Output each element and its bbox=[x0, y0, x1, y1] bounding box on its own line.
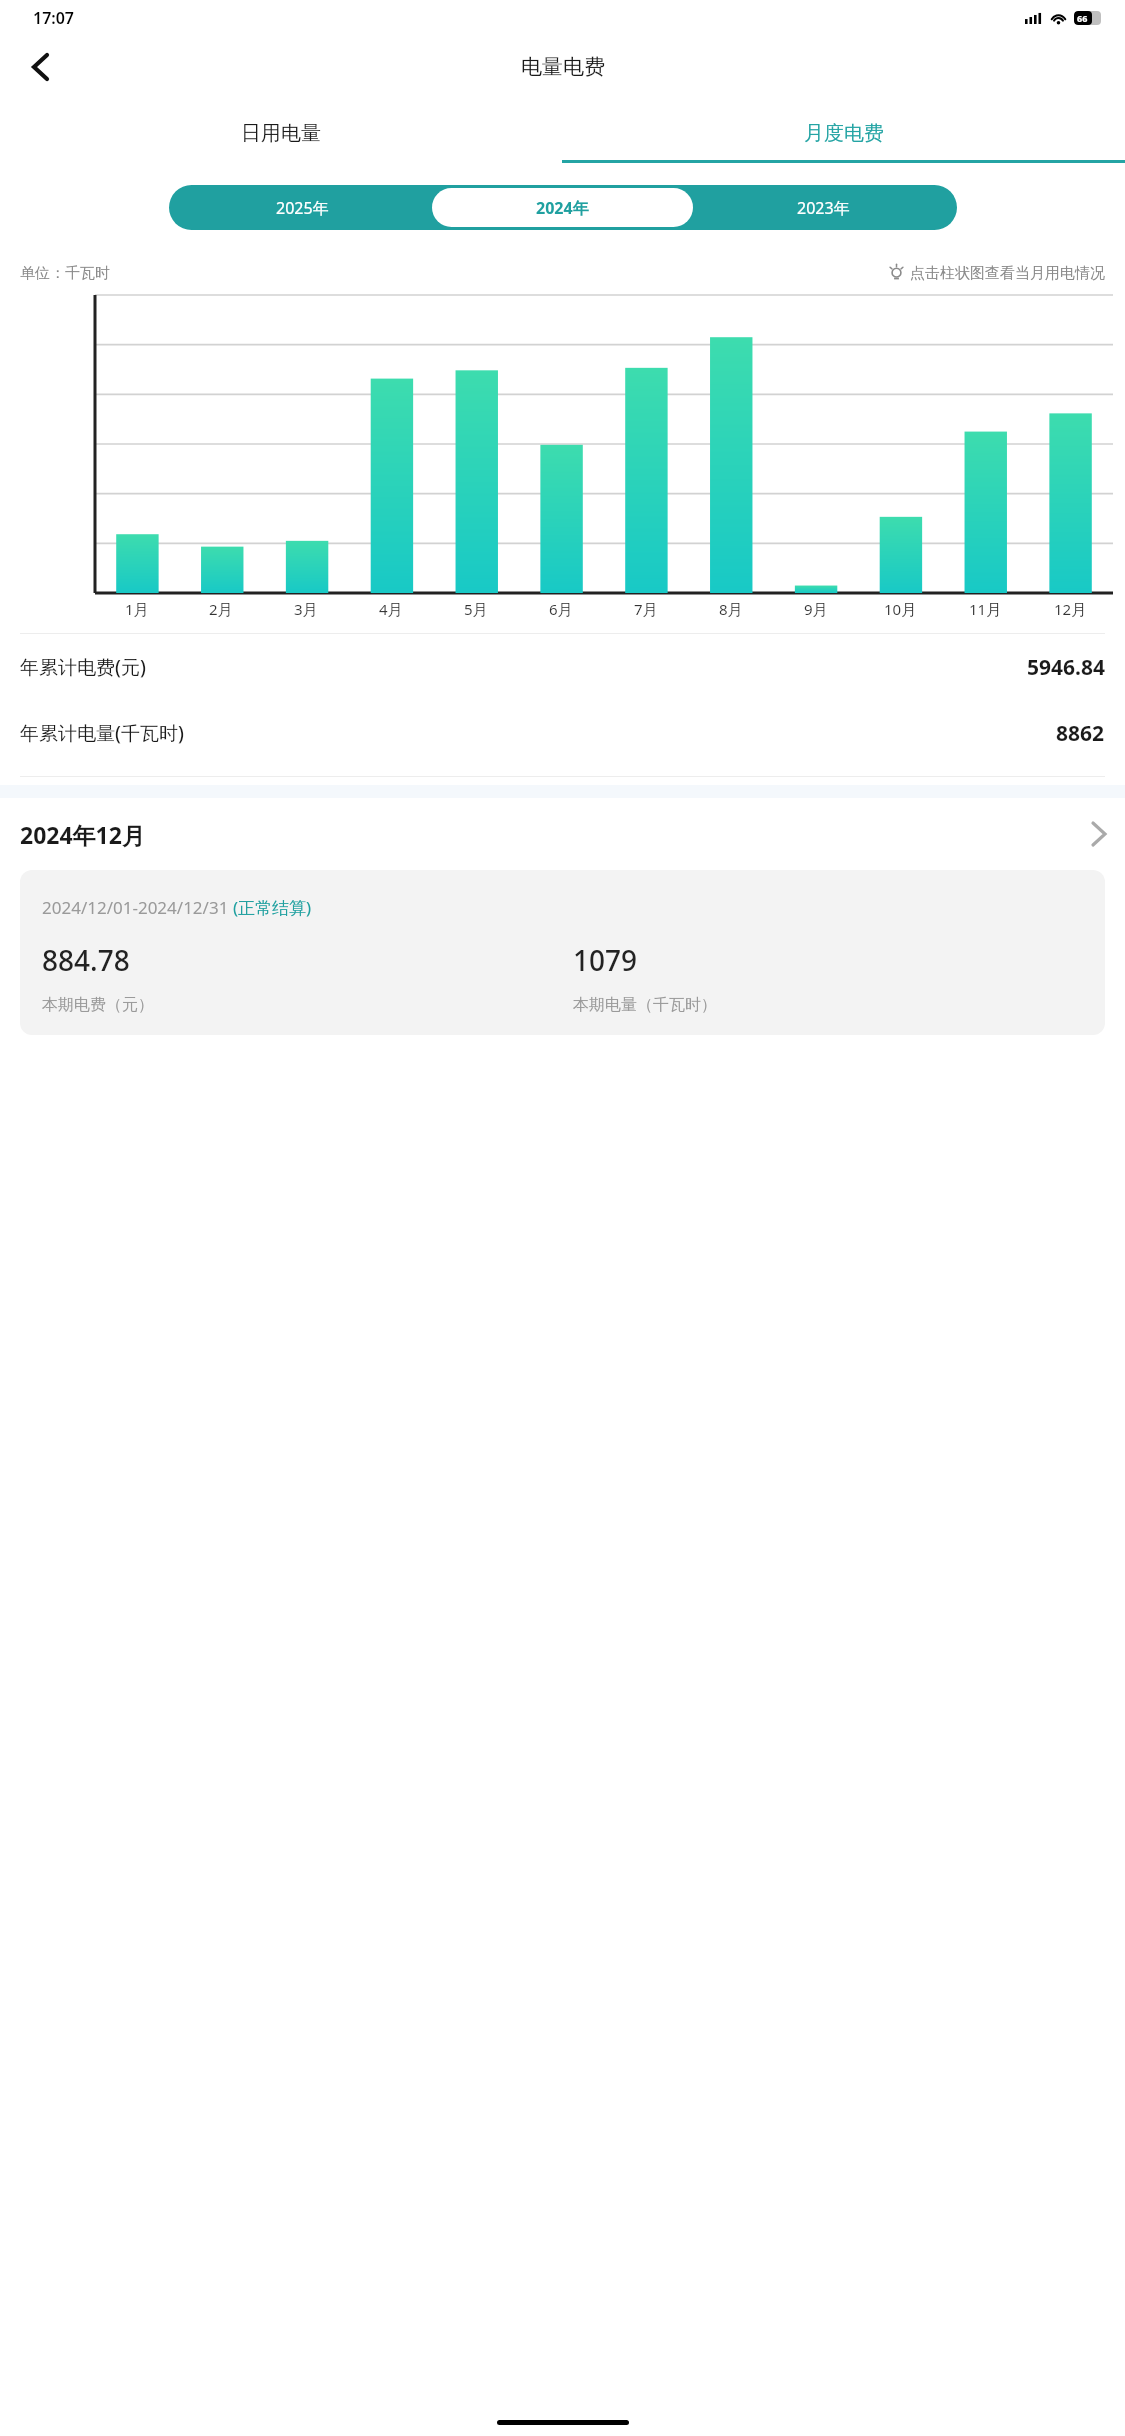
staticText: 12月 bbox=[1054, 599, 1087, 619]
staticText: 17:07 bbox=[33, 7, 75, 29]
staticText: 本期电量（千瓦时） bbox=[573, 995, 717, 1015]
button[interactable]: 年累计电费(元) bbox=[20, 634, 1105, 700]
button[interactable]: Back bbox=[18, 45, 62, 89]
staticText: 5月 bbox=[464, 599, 488, 619]
button[interactable]: 2024年 bbox=[432, 188, 693, 227]
staticText: 66 bbox=[1077, 12, 1088, 24]
button[interactable]: 2024/12/01-2024/12/31 bbox=[20, 870, 1105, 1035]
staticText: 4月 bbox=[379, 599, 403, 619]
staticText: 单位：千瓦时 bbox=[20, 264, 110, 283]
button[interactable]: 2024年12月 bbox=[20, 798, 1105, 870]
staticText: 年累计电费(元) bbox=[20, 654, 146, 680]
staticText: 2023年 bbox=[797, 197, 850, 219]
staticText: 2024年12月 bbox=[20, 819, 145, 850]
staticText: 1月 bbox=[125, 599, 149, 619]
staticText: 6月 bbox=[549, 599, 573, 619]
staticText: 2025年 bbox=[276, 197, 329, 219]
button[interactable]: 月度电费 bbox=[562, 106, 1125, 160]
staticText: 点击柱状图查看当月用电情况 bbox=[910, 264, 1105, 283]
staticText: 8862 bbox=[1056, 719, 1105, 748]
staticText: 1079 bbox=[573, 941, 638, 979]
staticText: 日用电量 bbox=[241, 121, 321, 146]
staticText: 月度电费 bbox=[804, 121, 884, 146]
staticText: 884.78 bbox=[42, 941, 130, 979]
staticText: 11月 bbox=[969, 599, 1002, 619]
staticText: 2月 bbox=[209, 599, 233, 619]
button[interactable]: 日用电量 bbox=[0, 106, 562, 160]
staticText: 2024/12/01-2024/12/31 bbox=[42, 896, 233, 919]
staticText: 本期电费（元） bbox=[42, 995, 154, 1015]
staticText: 10月 bbox=[884, 599, 917, 619]
button[interactable]: 2023年 bbox=[693, 188, 954, 227]
staticText: 电量电费 bbox=[521, 54, 605, 80]
staticText: 7月 bbox=[634, 599, 658, 619]
button[interactable]: 年累计电量(千瓦时) bbox=[20, 700, 1105, 766]
staticText: 5946.84 bbox=[1027, 653, 1105, 682]
staticText: 9月 bbox=[804, 599, 828, 619]
staticText: 3月 bbox=[294, 599, 318, 619]
button[interactable]: 2025年 bbox=[172, 188, 432, 227]
staticText: 8月 bbox=[719, 599, 743, 619]
staticText: (正常结算) bbox=[233, 896, 312, 919]
staticText: 2024年 bbox=[536, 197, 589, 219]
staticText: 年累计电量(千瓦时) bbox=[20, 720, 184, 746]
